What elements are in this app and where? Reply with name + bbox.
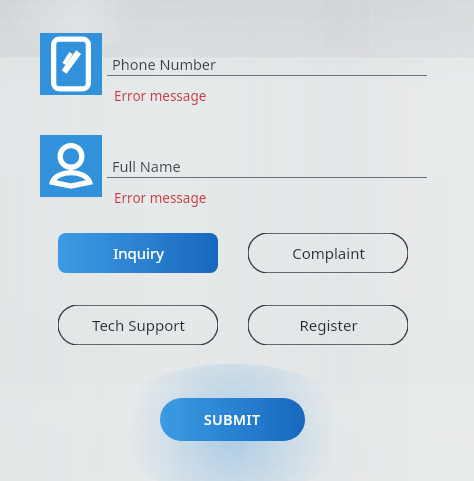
staticText: Register [299,315,358,335]
button[interactable]: Full name field [40,135,102,197]
staticText: Tech Support [92,315,185,335]
staticText: Phone Number [112,54,217,74]
staticText: Full Name [112,156,181,176]
button[interactable]: Tech Support [58,305,218,345]
button[interactable]: Complaint [248,233,408,273]
button[interactable]: SUBMIT [160,398,305,441]
staticText: Error message [114,189,207,207]
button[interactable]: Full Name [112,153,427,179]
button[interactable]: Phone Number [112,51,427,77]
staticText: Inquiry [113,243,164,263]
staticText: SUBMIT [204,410,261,429]
button[interactable]: Register [248,305,408,345]
staticText: Complaint [292,243,365,263]
staticText: Error message [114,87,207,105]
button[interactable]: Phone number field [40,33,102,95]
button[interactable]: Inquiry [58,233,218,273]
